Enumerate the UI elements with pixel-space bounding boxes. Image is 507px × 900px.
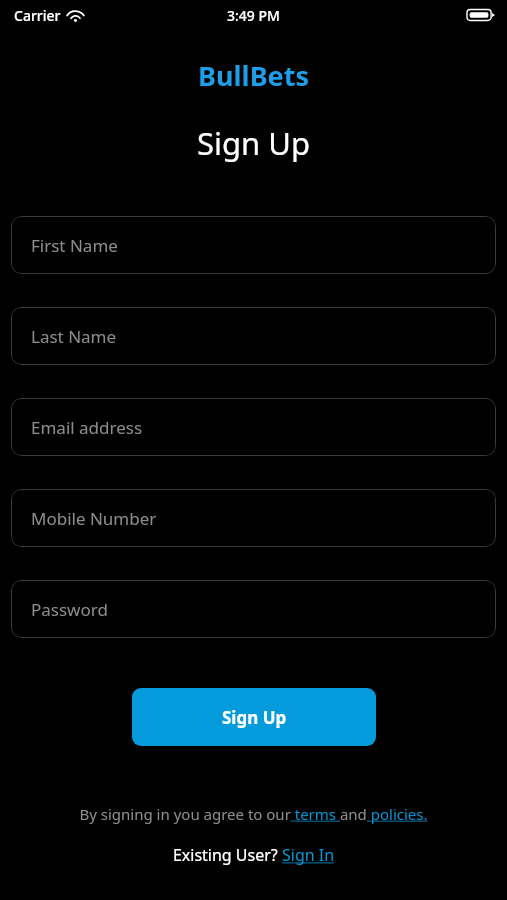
button[interactable]: Sign Up <box>132 688 376 746</box>
staticText: First Name <box>31 234 118 257</box>
button[interactable]: Existing User? Sign In <box>0 844 507 866</box>
staticText: Password <box>31 598 108 621</box>
button[interactable]: Mobile Number <box>11 489 496 547</box>
staticText: Sign Up <box>0 122 507 164</box>
staticText: Email address <box>31 416 143 439</box>
button[interactable]: By signing in you agree to our terms and… <box>0 804 507 824</box>
button[interactable]: Password <box>11 580 496 638</box>
staticText: Carrier <box>14 6 61 25</box>
staticText: 3:49 PM <box>227 6 280 25</box>
button[interactable]: Last Name <box>11 307 496 365</box>
staticText: Mobile Number <box>31 507 157 530</box>
staticText: Last Name <box>31 325 117 348</box>
staticText: Sign Up <box>222 706 287 729</box>
button[interactable]: Email address <box>11 398 496 456</box>
button[interactable]: First Name <box>11 216 496 274</box>
staticText: BullBets <box>0 57 507 94</box>
